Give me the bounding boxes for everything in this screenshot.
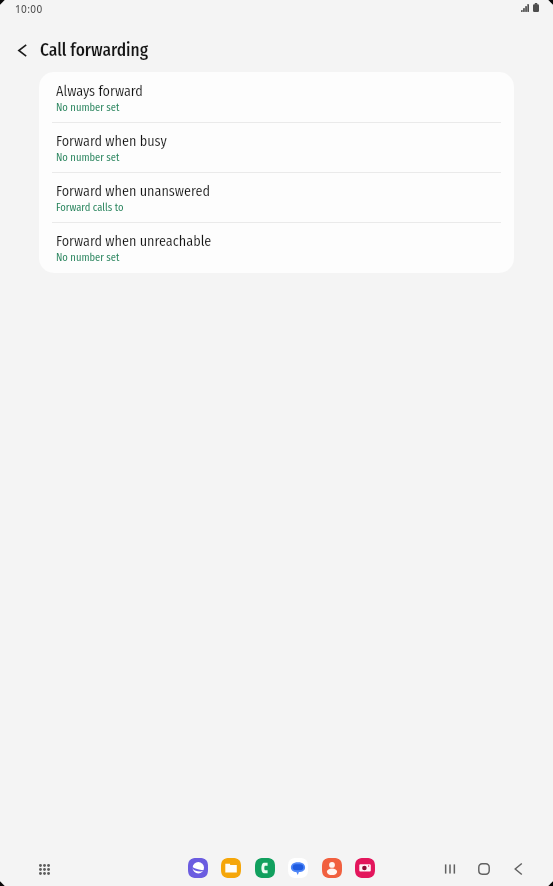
- button[interactable]: Always forward: [39, 72, 514, 122]
- staticText: No number set: [56, 101, 120, 114]
- button[interactable]: Forward when unreachable: [39, 222, 514, 272]
- button[interactable]: Recent apps: [437, 856, 463, 882]
- staticText: Forward when unreachable: [56, 233, 212, 250]
- staticText: Call forwarding: [40, 40, 149, 61]
- staticText: No number set: [56, 251, 120, 264]
- staticText: Forward when busy: [56, 133, 167, 150]
- button[interactable]: Navigate up: [5, 30, 39, 70]
- staticText: No number set: [56, 151, 120, 164]
- staticText: 10:00: [15, 2, 43, 16]
- button[interactable]: Forward when busy: [39, 122, 514, 172]
- button[interactable]: Messages: [288, 858, 308, 878]
- staticText: Always forward: [56, 83, 143, 100]
- button[interactable]: Camera: [355, 858, 375, 878]
- button[interactable]: Back: [505, 856, 531, 882]
- button[interactable]: Samsung Internet: [188, 858, 208, 878]
- button[interactable]: My Files: [221, 858, 241, 878]
- button[interactable]: Forward when unanswered: [39, 172, 514, 222]
- button[interactable]: Contacts: [322, 858, 342, 878]
- staticText: Forward calls to: [56, 201, 124, 214]
- button[interactable]: Phone: [255, 858, 275, 878]
- button[interactable]: Apps: [31, 856, 57, 882]
- staticText: Forward when unanswered: [56, 183, 211, 200]
- button[interactable]: Home: [471, 856, 497, 882]
